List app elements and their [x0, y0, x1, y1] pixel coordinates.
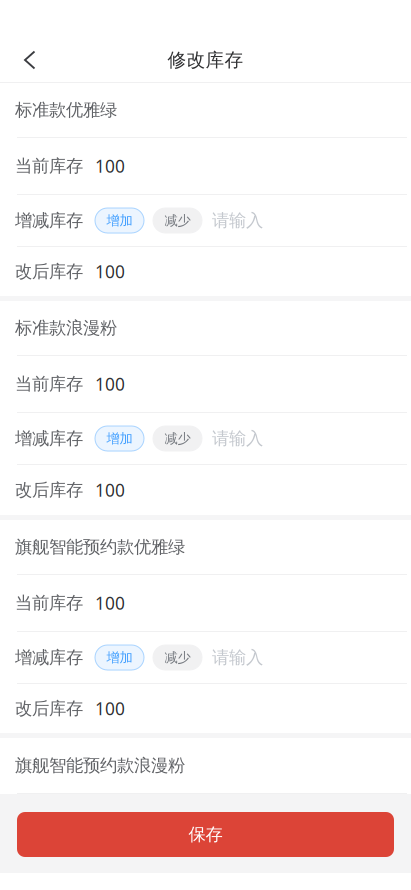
- button[interactable]: 增加: [95, 208, 144, 233]
- staticText: 标准款浪漫粉: [15, 317, 117, 339]
- staticText: 修改库存: [167, 48, 243, 71]
- staticText: 请输入: [212, 647, 263, 668]
- staticText: 旗舰智能预约款优雅绿: [15, 536, 185, 558]
- staticText: 100: [95, 372, 125, 395]
- staticText: 旗舰智能预约款浪漫粉: [15, 755, 185, 776]
- button[interactable]: 减少: [153, 645, 202, 670]
- staticText: 当前库存: [15, 592, 83, 614]
- staticText: 增加: [106, 649, 132, 666]
- staticText: 标准款优雅绿: [15, 99, 117, 121]
- staticText: 100: [95, 478, 125, 501]
- staticText: 改后库存: [15, 698, 83, 719]
- button[interactable]: 减少: [153, 426, 202, 451]
- staticText: 请输入: [212, 428, 263, 449]
- button[interactable]: 增加: [95, 645, 144, 670]
- staticText: 减少: [164, 649, 190, 666]
- staticText: 增加: [106, 430, 132, 447]
- button[interactable]: 保存: [17, 812, 394, 857]
- staticText: 当前库存: [15, 155, 83, 177]
- button[interactable]: Back: [0, 38, 64, 82]
- staticText: 请输入: [212, 210, 263, 231]
- staticText: 改后库存: [15, 261, 83, 282]
- button[interactable]: 增加: [95, 426, 144, 451]
- staticText: 减少: [164, 430, 190, 447]
- staticText: 增减库存: [15, 647, 83, 668]
- staticText: 100: [95, 697, 125, 720]
- staticText: 增加: [106, 212, 132, 229]
- staticText: 当前库存: [15, 373, 83, 395]
- staticText: 保存: [188, 824, 222, 845]
- staticText: 增减库存: [15, 210, 83, 231]
- button[interactable]: 减少: [153, 208, 202, 233]
- staticText: 增减库存: [15, 428, 83, 449]
- staticText: 100: [95, 591, 125, 614]
- staticText: 100: [95, 154, 125, 177]
- staticText: 减少: [164, 212, 190, 229]
- staticText: 改后库存: [15, 479, 83, 501]
- staticText: 100: [95, 260, 125, 283]
